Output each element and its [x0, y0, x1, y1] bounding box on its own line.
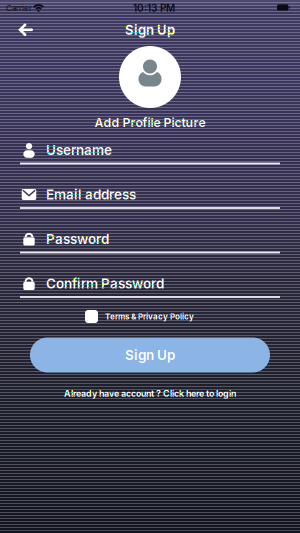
button[interactable]: Password: [20, 224, 280, 254]
staticText: Add Profile Picture: [94, 115, 205, 130]
staticText: Confirm Password: [46, 275, 164, 292]
staticText: Email address: [46, 186, 136, 203]
button[interactable]: Back: [10, 17, 42, 43]
staticText: 10:13 PM: [133, 2, 175, 14]
staticText: Sign Up: [125, 22, 175, 38]
button[interactable]: Sign Up: [30, 337, 270, 372]
staticText: Already have account ? Click here to log…: [64, 388, 236, 399]
button[interactable]: Add Profile Picture: [119, 46, 181, 108]
staticText: Password: [46, 231, 109, 247]
button[interactable]: Email address: [20, 179, 280, 209]
button[interactable]: Username: [20, 135, 280, 165]
button[interactable]: Terms & Privacy Policy: [85, 310, 194, 323]
button[interactable]: Already have account ? Click here to log…: [64, 388, 236, 399]
button[interactable]: Confirm Password: [20, 268, 280, 298]
staticText: Terms & Privacy Policy: [105, 312, 194, 321]
staticText: Carrier: [6, 3, 32, 13]
staticText: Username: [46, 142, 112, 158]
staticText: Sign Up: [125, 347, 175, 363]
